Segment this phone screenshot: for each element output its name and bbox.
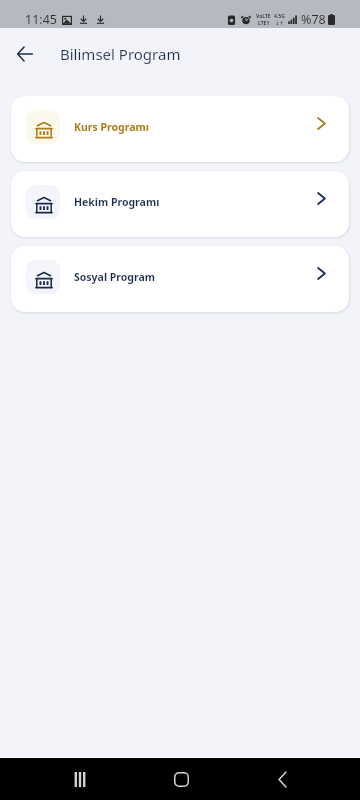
staticText: LTE1 bbox=[258, 20, 270, 27]
staticText: %78 bbox=[301, 11, 326, 28]
staticText: Bilimsel Program bbox=[60, 44, 181, 64]
button[interactable]: Kurs Programı bbox=[11, 96, 349, 162]
button[interactable]: Back bbox=[262, 759, 302, 799]
button[interactable]: Home bbox=[161, 759, 201, 799]
button[interactable]: Back bbox=[9, 38, 41, 70]
staticText: 4.5G bbox=[274, 13, 285, 20]
staticText: Kurs Programı bbox=[74, 120, 149, 134]
staticText: Hekim Programı bbox=[74, 195, 160, 209]
staticText: 11:45 bbox=[25, 11, 57, 28]
button[interactable]: Sosyal Program bbox=[11, 246, 349, 312]
staticText: VoLTE bbox=[256, 13, 271, 20]
button[interactable]: Recent apps bbox=[60, 759, 100, 799]
staticText: ↓↑ bbox=[275, 20, 284, 26]
staticText: Sosyal Program bbox=[74, 270, 155, 284]
button[interactable]: Hekim Programı bbox=[11, 171, 349, 237]
